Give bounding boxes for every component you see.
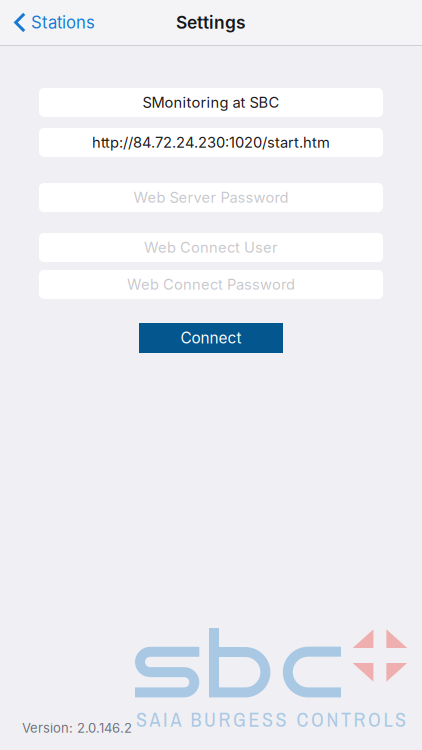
button[interactable]: Stations xyxy=(0,0,105,45)
button[interactable]: SMonitoring at SBC xyxy=(39,88,383,117)
staticText: Stations xyxy=(31,12,95,33)
staticText: SAIA BURGESS CONTROLS xyxy=(136,706,406,733)
staticText: Version: 2.0.146.2 xyxy=(22,720,132,736)
staticText: http://84.72.24.230:1020/start.htm xyxy=(92,134,330,151)
button[interactable]: Web Server Password xyxy=(39,183,383,212)
staticText: Connect xyxy=(180,329,241,347)
button[interactable]: Connect xyxy=(139,323,283,353)
staticText: Web Connect User xyxy=(144,239,278,256)
staticText: Web Connect Password xyxy=(127,276,295,293)
button[interactable]: Web Connect Password xyxy=(39,270,383,299)
staticText: Settings xyxy=(176,12,246,33)
button[interactable]: Web Connect User xyxy=(39,233,383,262)
button[interactable]: http://84.72.24.230:1020/start.htm xyxy=(39,128,383,157)
staticText: SMonitoring at SBC xyxy=(142,94,279,111)
staticText: Web Server Password xyxy=(133,189,288,206)
